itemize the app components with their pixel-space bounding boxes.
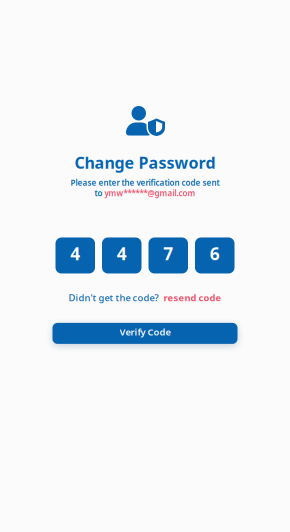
staticText: 6 [210, 242, 220, 265]
button[interactable]: 7 [148, 237, 188, 273]
button[interactable]: 6 [195, 237, 234, 273]
staticText: resend code [163, 291, 221, 304]
button[interactable]: 4 [55, 237, 95, 273]
button[interactable]: Verify Code [52, 323, 237, 344]
staticText: 7 [163, 242, 173, 265]
button[interactable]: resend code [163, 291, 221, 304]
staticText: to [94, 188, 104, 198]
staticText: 4 [70, 242, 80, 265]
staticText: Didn't get the code? [68, 291, 158, 304]
button[interactable]: 4 [102, 237, 141, 273]
staticText: 4 [117, 242, 127, 265]
staticText: Please enter the verification code sent [70, 177, 219, 188]
staticText: ymw******@gmail.com [104, 188, 195, 198]
staticText: Change Password [74, 152, 215, 173]
staticText: Verify Code [119, 326, 170, 338]
